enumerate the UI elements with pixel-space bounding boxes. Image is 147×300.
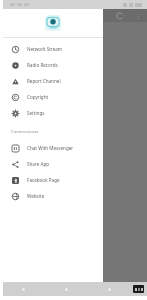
button[interactable] [7,101,33,125]
button[interactable]: Favourite [67,26,79,38]
button[interactable] [37,62,63,86]
staticText: Settings [27,110,45,116]
button[interactable] [7,62,33,86]
button[interactable]: Share App [3,156,103,172]
staticText: Report Channel [27,78,61,84]
button[interactable]: Network Stream [3,41,103,57]
button[interactable]: Back [17,283,29,295]
button[interactable]: Home [60,283,72,295]
button[interactable]: Settings [3,105,103,121]
staticText: Communicate [11,129,39,135]
button[interactable]: Radio Records [3,57,103,73]
staticText: Share App [27,161,50,167]
button[interactable]: More options [133,11,143,21]
button[interactable]: Recent apps [103,283,115,295]
button[interactable]: Chat With Messenger [3,140,103,156]
staticText: Chat With Messenger [27,145,74,151]
button[interactable]: Facebook Page [3,172,103,188]
button[interactable]: Refresh [115,11,125,21]
staticText: Radio Records [27,62,58,68]
staticText: Network Stream [27,46,63,52]
staticText: Website [27,193,45,199]
button[interactable] [37,101,63,125]
button[interactable]: Website [3,188,103,204]
staticText: Copyright [27,94,49,100]
button[interactable]: Copyright [3,89,103,105]
staticText: Facebook Page [27,177,60,183]
button[interactable]: Report Channel [3,73,103,89]
